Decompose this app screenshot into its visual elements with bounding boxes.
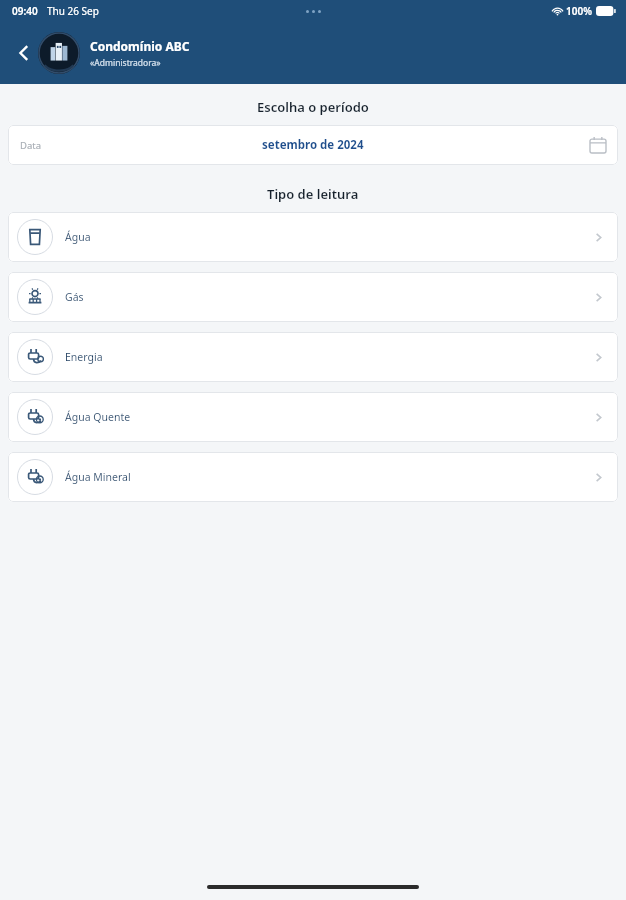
staticText: Água Mineral	[65, 470, 131, 484]
button[interactable]: Data	[8, 125, 618, 165]
button[interactable]: Back	[6, 35, 42, 71]
staticText: Energia	[65, 350, 103, 364]
button[interactable]: Água Quente	[8, 392, 618, 442]
button[interactable]: Água	[8, 212, 618, 262]
staticText: Água Quente	[65, 410, 131, 424]
staticText: Escolha o período	[257, 98, 369, 116]
staticText: Data	[20, 139, 42, 152]
button[interactable]: Energia	[8, 332, 618, 382]
button[interactable]: Gás	[8, 272, 618, 322]
staticText: Gás	[65, 290, 84, 304]
staticText: «Administradora»	[90, 57, 161, 69]
button[interactable]: Água Mineral	[8, 452, 618, 502]
staticText: setembro de 2024	[262, 137, 364, 153]
staticText: Thu 26 Sep	[47, 4, 99, 18]
staticText: Água	[65, 230, 91, 244]
staticText: Condomínio ABC	[90, 38, 190, 54]
staticText: 100%	[566, 4, 592, 18]
staticText: 09:40	[12, 4, 38, 18]
staticText: Tipo de leitura	[267, 185, 359, 203]
